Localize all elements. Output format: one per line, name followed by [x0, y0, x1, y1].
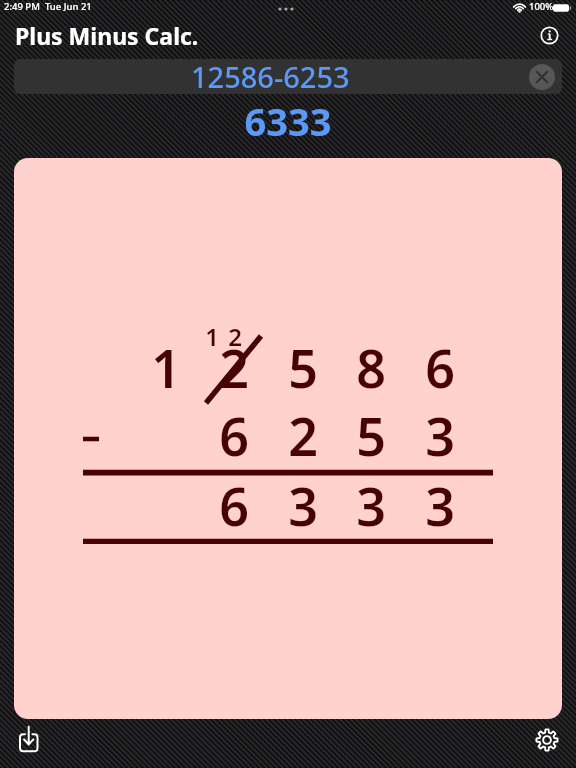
staticText: 5	[356, 400, 386, 471]
button[interactable]: Save	[11, 720, 47, 756]
staticText: Plus Minus Calc.	[15, 20, 199, 51]
staticText: 3	[425, 400, 455, 471]
staticText: Tue Jun 21	[45, 0, 92, 13]
staticText: 5	[288, 332, 318, 403]
staticText: 3	[425, 470, 455, 541]
button[interactable]: Settings	[530, 723, 564, 757]
staticText: 6333	[0, 95, 576, 147]
button[interactable]: 12586-6253	[14, 59, 562, 94]
button[interactable]: Info	[534, 20, 565, 51]
staticText: 8	[356, 332, 386, 403]
staticText: 2	[219, 332, 249, 403]
button[interactable]: Clear text	[529, 64, 555, 90]
staticText: 1	[151, 332, 181, 403]
staticText: 100%	[529, 0, 554, 13]
staticText: 12586-6253	[191, 59, 350, 92]
staticText: 3	[288, 470, 318, 541]
staticText: 6	[219, 400, 249, 471]
staticText: 2	[288, 400, 318, 471]
staticText: 6	[219, 470, 249, 541]
button[interactable]: Worked solution	[14, 158, 562, 719]
staticText: 6	[425, 332, 455, 403]
staticText: 2	[228, 320, 242, 353]
staticText: 3	[356, 470, 386, 541]
staticText: 2:49 PM	[4, 0, 40, 13]
staticText: 1	[205, 320, 219, 353]
